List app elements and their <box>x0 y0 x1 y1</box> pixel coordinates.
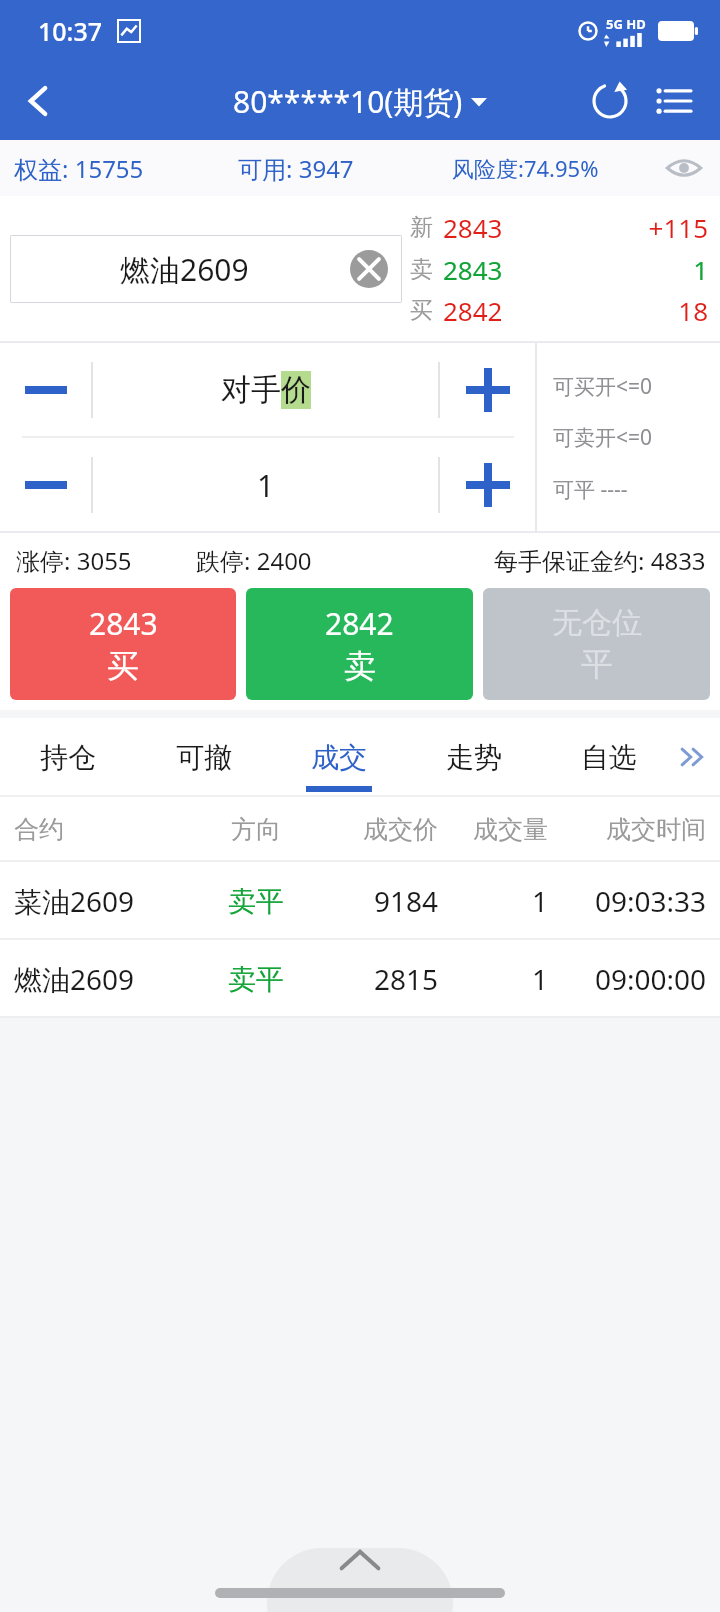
button[interactable]: 持仓 <box>0 718 136 796</box>
staticText: 2843 <box>443 252 503 287</box>
staticText: 5G HD <box>606 15 646 33</box>
staticText: 价 <box>281 371 311 409</box>
staticText: 燃油2609 <box>14 960 200 998</box>
staticText: 平 <box>581 644 613 684</box>
staticText: 成交 <box>311 740 367 775</box>
button[interactable]: Refresh <box>578 69 642 133</box>
staticText: 涨停: 3055 <box>16 544 132 577</box>
button[interactable]: Back <box>0 62 78 140</box>
staticText: 卖平 <box>200 884 312 919</box>
staticText: 9184 <box>312 882 438 920</box>
staticText: 对手 <box>221 371 281 409</box>
button[interactable]: 对手 <box>93 343 439 437</box>
staticText: 自选 <box>581 740 637 775</box>
staticText: 2842 <box>325 603 394 644</box>
staticText: 可平 ---- <box>553 475 628 504</box>
button[interactable]: Expand panel <box>267 1548 453 1612</box>
staticText: 每手保证金约: 4833 <box>494 544 706 577</box>
staticText: 成交价 <box>312 814 438 845</box>
staticText: 1 <box>438 960 548 998</box>
button[interactable]: 可撤 <box>136 718 271 796</box>
button[interactable]: 自选 <box>541 718 676 796</box>
staticText: 成交时间 <box>548 814 706 845</box>
staticText: 10:37 <box>38 14 103 48</box>
staticText: 风险度:74.95% <box>452 153 599 183</box>
button[interactable]: 1 <box>93 438 439 532</box>
staticText: 可买开<=0 <box>553 372 653 401</box>
button[interactable]: Clear <box>350 250 388 288</box>
staticText: 2843 <box>89 603 158 644</box>
button[interactable]: 成交 <box>271 718 406 796</box>
button[interactable]: 燃油2609 <box>10 235 402 303</box>
staticText: 买 <box>107 646 139 686</box>
staticText: 权益: 15755 <box>14 152 144 185</box>
staticText: 无仓位 <box>552 604 642 642</box>
button[interactable]: Toggle visibility <box>658 142 710 194</box>
staticText: 可卖开<=0 <box>553 423 653 452</box>
staticText: 成交量 <box>438 814 548 845</box>
staticText: 卖 <box>344 646 376 686</box>
staticText: 2842 <box>443 293 503 328</box>
button[interactable]: Increase <box>440 343 536 437</box>
staticText: 菜油2609 <box>14 882 200 920</box>
staticText: 09:03:33 <box>548 882 706 920</box>
button[interactable]: More tabs <box>670 735 714 779</box>
staticText: +115 <box>503 210 708 245</box>
button[interactable]: 燃油2609 <box>0 940 720 1018</box>
staticText: 买 <box>410 296 433 325</box>
staticText: 走势 <box>446 740 502 775</box>
staticText: 持仓 <box>40 740 96 775</box>
staticText: 合约 <box>14 814 200 845</box>
button[interactable]: 走势 <box>406 718 541 796</box>
button[interactable]: Decrease <box>0 343 92 437</box>
staticText: 方向 <box>200 814 312 845</box>
staticText: 卖平 <box>200 962 312 997</box>
staticText: 1 <box>257 465 275 506</box>
button[interactable]: Decrease <box>0 438 92 532</box>
button[interactable]: 2843 <box>10 588 236 700</box>
staticText: 18 <box>503 293 708 328</box>
staticText: 新 <box>410 213 433 242</box>
button[interactable]: 无仓位 <box>483 588 710 700</box>
staticText: 80*****10(期货) <box>233 81 463 122</box>
button[interactable]: 2842 <box>246 588 473 700</box>
staticText: 燃油2609 <box>120 249 249 290</box>
staticText: 1 <box>503 252 708 287</box>
staticText: 可用: 3947 <box>238 152 354 185</box>
staticText: 2815 <box>312 960 438 998</box>
staticText: 卖 <box>410 255 433 284</box>
staticText: 跌停: 2400 <box>196 544 312 577</box>
staticText: 可撤 <box>176 740 232 775</box>
staticText: 1 <box>438 882 548 920</box>
staticText: 2843 <box>443 210 503 245</box>
button[interactable]: Menu <box>642 69 706 133</box>
button[interactable]: Increase <box>440 438 536 532</box>
button[interactable]: 80*****10(期货) <box>233 81 487 122</box>
button[interactable]: 菜油2609 <box>0 862 720 940</box>
staticText: 09:00:00 <box>548 960 706 998</box>
